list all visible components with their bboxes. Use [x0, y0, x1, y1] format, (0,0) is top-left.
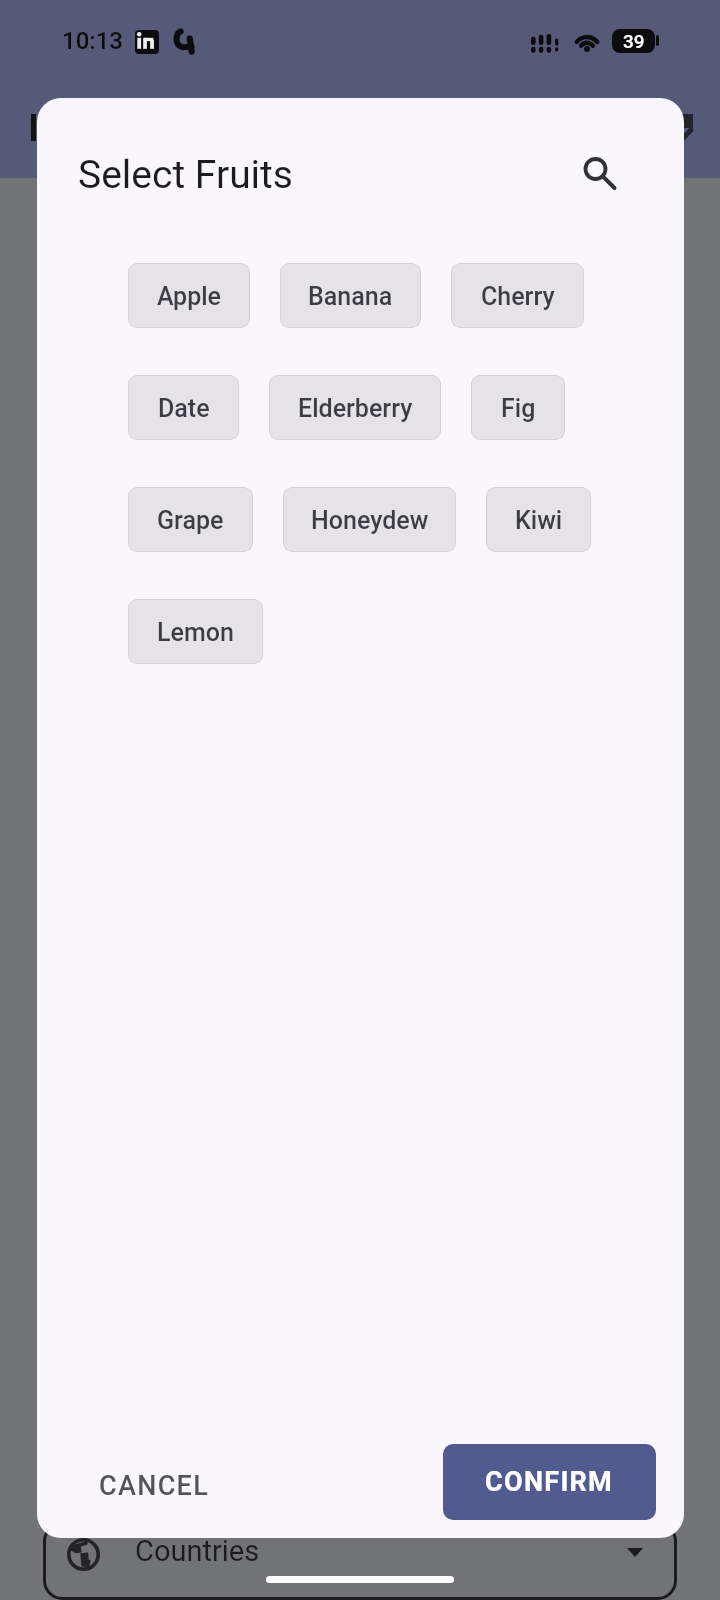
- staticText: CONFIRM: [485, 1466, 614, 1498]
- button[interactable]: Countries dropdown: [43, 1522, 677, 1600]
- button[interactable]: Kiwi: [486, 487, 591, 552]
- staticText: Apple: [157, 282, 222, 311]
- staticText: Banana: [308, 282, 393, 311]
- staticText: CANCEL: [99, 1470, 210, 1502]
- button[interactable]: Apple: [128, 263, 250, 328]
- staticText: Honeydew: [311, 506, 429, 535]
- button[interactable]: Date: [128, 375, 239, 440]
- staticText: Countries: [135, 1534, 260, 1568]
- staticText: 39: [623, 30, 645, 52]
- button[interactable]: CANCEL: [78, 1450, 230, 1522]
- staticText: Date: [158, 394, 210, 423]
- staticText: Elderberry: [298, 394, 413, 423]
- button[interactable]: Lemon: [128, 599, 263, 664]
- staticText: Kiwi: [515, 506, 563, 535]
- staticText: 10:13: [62, 27, 123, 55]
- button[interactable]: Elderberry: [269, 375, 441, 440]
- button[interactable]: Search: [573, 146, 625, 198]
- button[interactable]: CONFIRM: [443, 1444, 656, 1520]
- staticText: Fig: [501, 394, 536, 423]
- button[interactable]: Fig: [471, 375, 565, 440]
- staticText: Lemon: [157, 618, 234, 647]
- button[interactable]: Grape: [128, 487, 253, 552]
- staticText: Grape: [157, 506, 224, 535]
- staticText: Cherry: [481, 282, 555, 311]
- button[interactable]: Cherry: [451, 263, 584, 328]
- staticText: Select Fruits: [78, 152, 293, 198]
- button[interactable]: Honeydew: [283, 487, 456, 552]
- button[interactable]: Banana: [280, 263, 421, 328]
